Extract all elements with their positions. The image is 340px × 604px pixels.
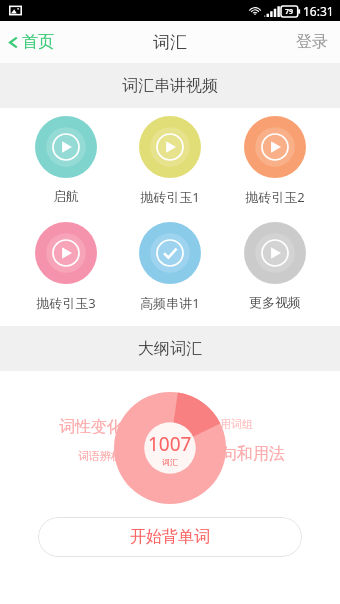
button[interactable]: 抛砖引玉3 xyxy=(17,222,115,312)
button[interactable]: 启航 xyxy=(17,116,115,204)
staticText: 大纲词汇 xyxy=(138,339,202,359)
button[interactable]: 高频串讲1 xyxy=(121,222,219,312)
staticText: 高频串讲1 xyxy=(140,294,200,312)
staticText: 16:31 xyxy=(303,3,334,19)
staticText: 开始背单词 xyxy=(130,527,210,547)
staticText: 首页 xyxy=(22,32,54,52)
staticText: 例句和用法 xyxy=(205,444,285,464)
staticText: 79 xyxy=(285,7,294,17)
staticText: 词汇 xyxy=(153,32,187,53)
staticText: 常用词组 xyxy=(209,417,253,431)
staticText: 词汇串讲视频 xyxy=(122,76,218,96)
button[interactable]: 登录 xyxy=(284,21,340,63)
button[interactable]: 抛砖引玉2 xyxy=(226,116,324,206)
staticText: 抛砖引玉3 xyxy=(36,294,96,312)
staticText: 联想记忆 xyxy=(138,477,202,497)
staticText: 词汇 xyxy=(162,457,178,467)
button[interactable]: 首页 xyxy=(0,21,64,63)
staticText: 更多视频 xyxy=(249,294,301,310)
staticText: 启航 xyxy=(53,188,79,204)
button[interactable]: 更多视频 xyxy=(226,222,324,310)
staticText: 词性变化 xyxy=(59,417,123,437)
staticText: 1007 xyxy=(148,431,192,457)
button[interactable]: 抛砖引玉1 xyxy=(121,116,219,206)
staticText: 词语辨析 xyxy=(78,449,122,463)
staticText: 登录 xyxy=(296,32,328,52)
staticText: 抛砖引玉1 xyxy=(140,188,200,206)
staticText: 抛砖引玉2 xyxy=(245,188,305,206)
button[interactable]: 开始背单词 xyxy=(38,517,302,557)
